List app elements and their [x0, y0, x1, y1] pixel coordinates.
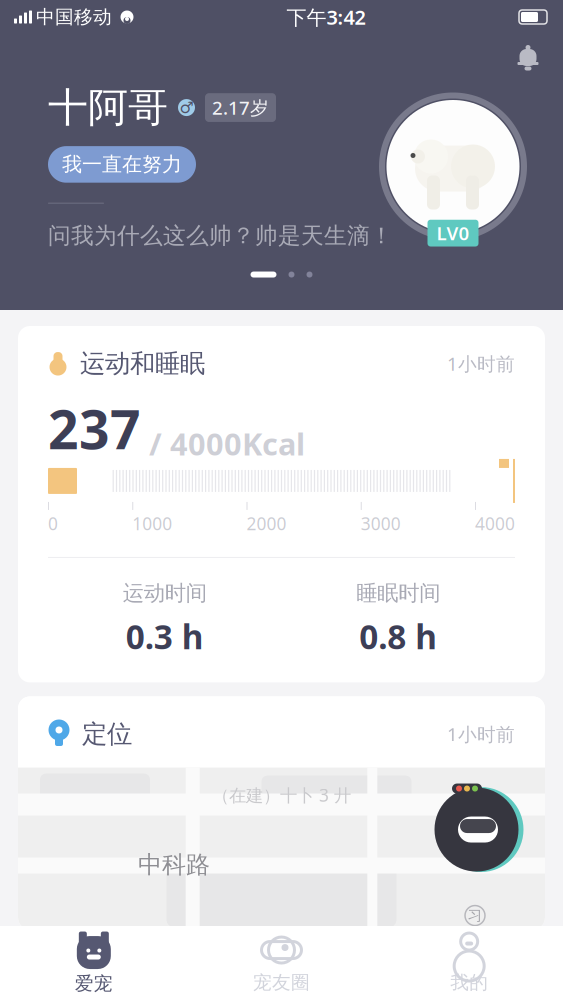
- staticText: LV0: [436, 221, 469, 245]
- staticText: 4000: [475, 512, 515, 535]
- staticText: 0: [48, 512, 58, 535]
- staticText: 1小时前: [447, 722, 515, 746]
- staticText: 十阿哥: [48, 83, 168, 132]
- staticText: 0.3 h: [126, 614, 204, 658]
- staticText: ♂: [179, 98, 193, 117]
- staticText: 宠友圈: [253, 971, 310, 994]
- staticText: 睡眠时间: [356, 580, 440, 606]
- staticText: 下午3:42: [286, 4, 365, 30]
- staticText: 1小时前: [447, 351, 515, 376]
- staticText: 1000: [132, 512, 172, 535]
- staticText: 2000: [246, 512, 286, 535]
- button[interactable]: Notifications: [507, 36, 549, 79]
- staticText: 习: [467, 906, 482, 924]
- staticText: 2.17岁: [212, 95, 269, 120]
- staticText: 运动和睡眠: [80, 348, 205, 379]
- staticText: 中国移动: [36, 5, 112, 28]
- staticText: 中科路: [138, 850, 210, 880]
- staticText: 我的: [450, 971, 488, 994]
- button[interactable]: 我的: [375, 926, 563, 1000]
- staticText: （在建）十卜 3 廾: [212, 783, 351, 806]
- staticText: 237: [48, 393, 141, 464]
- button[interactable]: 宠友圈: [188, 926, 375, 1000]
- button[interactable]: 爱宠: [0, 925, 188, 1000]
- staticText: 我一直在努力: [62, 152, 182, 177]
- staticText: 运动时间: [123, 580, 207, 606]
- staticText: 定位: [82, 718, 132, 749]
- staticText: 3000: [361, 512, 401, 535]
- staticText: 0.8 h: [359, 614, 437, 658]
- staticText: / 4000Kcal: [141, 423, 305, 464]
- staticText: 问我为什么这么帅？帅是天生滴！: [48, 222, 393, 249]
- staticText: 爱宠: [75, 972, 113, 995]
- button[interactable]: Pet avatar: [378, 84, 528, 249]
